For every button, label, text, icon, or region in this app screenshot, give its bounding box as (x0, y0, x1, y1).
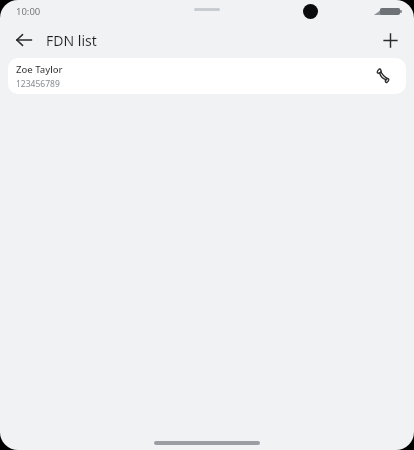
staticText: Zoe Taylor (16, 63, 63, 76)
button[interactable]: Call (370, 62, 398, 90)
staticText: FDN list (46, 31, 97, 50)
staticText: 123456789 (16, 78, 60, 90)
button[interactable]: Zoe Taylor (8, 58, 406, 94)
button[interactable]: Add (374, 24, 406, 56)
staticText: 10:00 (16, 5, 41, 18)
button[interactable]: Back (8, 24, 40, 56)
